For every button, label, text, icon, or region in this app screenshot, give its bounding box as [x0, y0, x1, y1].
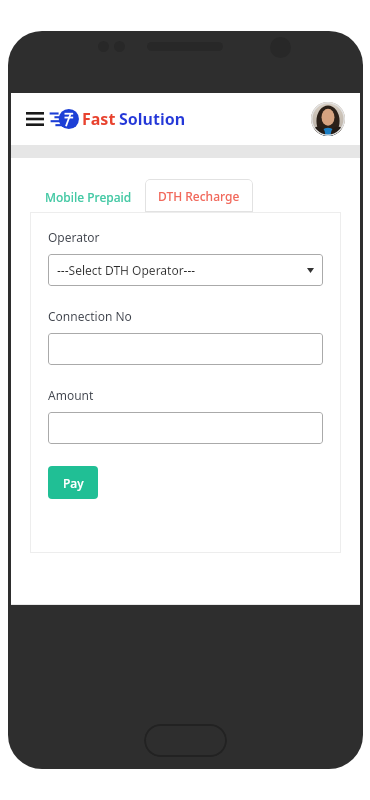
button[interactable]: Menu — [21, 105, 49, 133]
button[interactable]: DTH Recharge — [145, 179, 253, 212]
staticText: Solution — [119, 108, 186, 130]
staticText: DTH Recharge — [158, 188, 240, 204]
staticText: ---Select DTH Operator--- — [57, 262, 196, 278]
button[interactable] — [48, 412, 323, 444]
staticText: Amount — [48, 387, 94, 403]
button[interactable]: Mobile Prepaid — [32, 181, 145, 212]
button[interactable]: Profile — [311, 102, 345, 136]
button[interactable]: Fast — [49, 108, 186, 130]
staticText: Operator — [48, 229, 100, 245]
button[interactable]: ---Select DTH Operator--- — [48, 254, 323, 286]
staticText: Connection No — [48, 308, 132, 324]
button[interactable]: Pay — [48, 466, 98, 499]
staticText: Pay — [63, 475, 84, 491]
button[interactable] — [48, 333, 323, 365]
staticText: Fast — [82, 108, 116, 130]
staticText: Mobile Prepaid — [45, 189, 132, 205]
